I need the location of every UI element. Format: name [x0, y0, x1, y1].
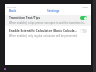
staticText: When enabled, only regular calculator wi… [9, 34, 78, 38]
staticText: Settings [47, 9, 60, 13]
button[interactable]: Transition Text/Tips [5, 15, 91, 26]
staticText: 100% [82, 5, 89, 8]
staticText: When enabled, a tips primer can open in … [9, 21, 87, 25]
button[interactable]: Enable Scientific Calculator (Basic Calc… [5, 28, 91, 39]
button[interactable]: Back [5, 8, 21, 14]
button[interactable]: Enable Enable Scientific Calculator (Bas… [80, 29, 87, 33]
staticText: Transition Text/Tips [9, 16, 78, 20]
staticText: Back [9, 9, 17, 13]
button[interactable]: Settings [45, 8, 62, 14]
button[interactable]: Disable Transition Text/Tips [80, 16, 87, 20]
staticText: 9:41 AM [7, 5, 17, 8]
staticText: Enable Scientific Calculator (Basic Calc… [9, 29, 78, 33]
